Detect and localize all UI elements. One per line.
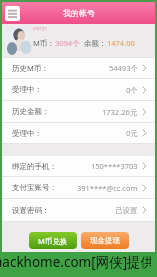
staticText: 受理中： — [12, 129, 42, 138]
staticText: 余额： — [84, 39, 107, 48]
button[interactable]: 设置密码： — [2, 199, 155, 222]
staticText: 0元 — [126, 128, 138, 138]
staticText: yxmjz — [33, 25, 47, 32]
button[interactable]: 受理中： — [2, 123, 155, 144]
button[interactable]: 历史M币： — [2, 58, 155, 79]
staticText: M币： — [33, 38, 55, 48]
staticText: 150****3703 — [91, 161, 138, 171]
staticText: M币兑换 — [38, 236, 68, 246]
staticText: 受理中： — [12, 85, 42, 94]
button[interactable]: 受理中： — [2, 79, 155, 101]
button[interactable]: 现金提现 — [81, 232, 129, 249]
button[interactable]: Menu — [5, 6, 20, 21]
staticText: hackhome.com[网侠]提供 — [0, 253, 151, 271]
button[interactable]: M币兑换 — [29, 232, 77, 249]
staticText: 历史金额： — [12, 107, 50, 116]
button[interactable]: 绑定的手机： — [2, 156, 155, 177]
staticText: 支付宝账号： — [12, 183, 57, 192]
button[interactable]: 历史金额： — [2, 101, 155, 123]
staticText: 我的帐号 — [63, 8, 95, 18]
staticText: 1732.26元 — [102, 107, 138, 117]
staticText: 54493个 — [109, 63, 138, 73]
staticText: 设置密码： — [12, 206, 50, 215]
staticText: 已设置 — [115, 206, 138, 215]
staticText: 1474.00 — [107, 38, 135, 48]
staticText: 0个 — [126, 85, 138, 95]
staticText: 历史M币： — [12, 63, 49, 73]
staticText: 现金提现 — [90, 236, 120, 245]
staticText: 3094个 — [55, 38, 80, 48]
staticText: 391****@cc.com — [77, 183, 138, 193]
button[interactable]: 支付宝账号： — [2, 177, 155, 199]
staticText: 绑定的手机： — [12, 162, 57, 171]
